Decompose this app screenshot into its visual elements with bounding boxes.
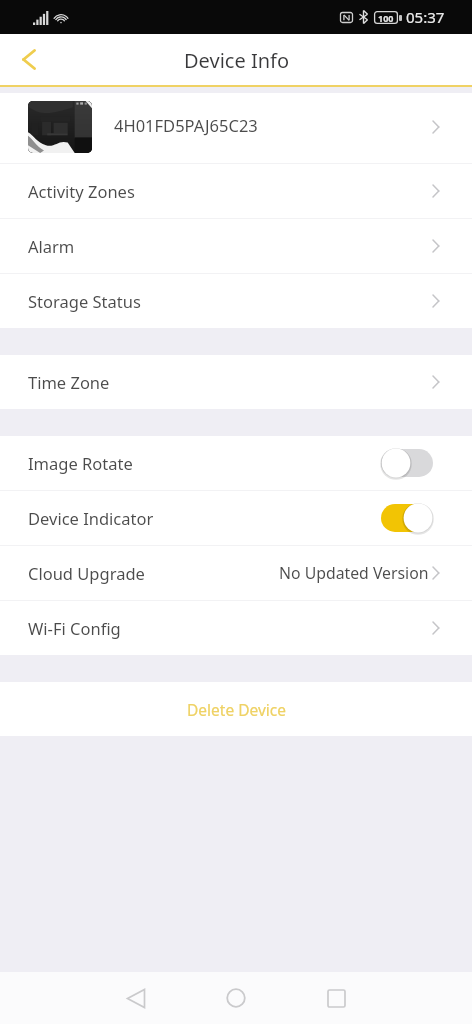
button[interactable]: Back (0, 35, 56, 85)
staticText: Alarm (28, 235, 75, 257)
button[interactable]: 4H01FD5PAJ65C23 (0, 93, 472, 163)
button[interactable]: Home (186, 972, 286, 1024)
button[interactable]: Alarm (0, 219, 472, 273)
button[interactable]: Device Indicator (0, 491, 472, 545)
button[interactable]: Image Rotate (0, 436, 472, 490)
staticText: Device Info (184, 47, 289, 74)
staticText: Time Zone (28, 371, 110, 393)
button[interactable]: Activity Zones (0, 164, 472, 218)
button[interactable]: Delete Device (0, 682, 472, 736)
button[interactable]: Image Rotate off (381, 448, 433, 478)
button[interactable]: Recent apps (286, 972, 386, 1024)
staticText: Activity Zones (28, 180, 135, 202)
staticText: 05:37 (406, 7, 445, 27)
staticText: Device Indicator (28, 507, 154, 529)
staticText: 100 (378, 12, 394, 24)
staticText: Wi-Fi Config (28, 617, 121, 639)
button[interactable]: Time Zone (0, 355, 472, 409)
staticText: 4H01FD5PAJ65C23 (114, 114, 258, 136)
staticText: Image Rotate (28, 452, 133, 474)
button[interactable]: Wi-Fi Config (0, 601, 472, 655)
staticText: Cloud Upgrade (28, 562, 145, 584)
button[interactable]: Storage Status (0, 274, 472, 328)
button[interactable]: Cloud Upgrade (0, 546, 472, 600)
staticText: Storage Status (28, 290, 141, 312)
button[interactable]: Back (86, 972, 186, 1024)
staticText: No Updated Version (279, 562, 429, 584)
button[interactable]: Device Indicator on (381, 503, 433, 533)
staticText: Delete Device (187, 699, 286, 720)
